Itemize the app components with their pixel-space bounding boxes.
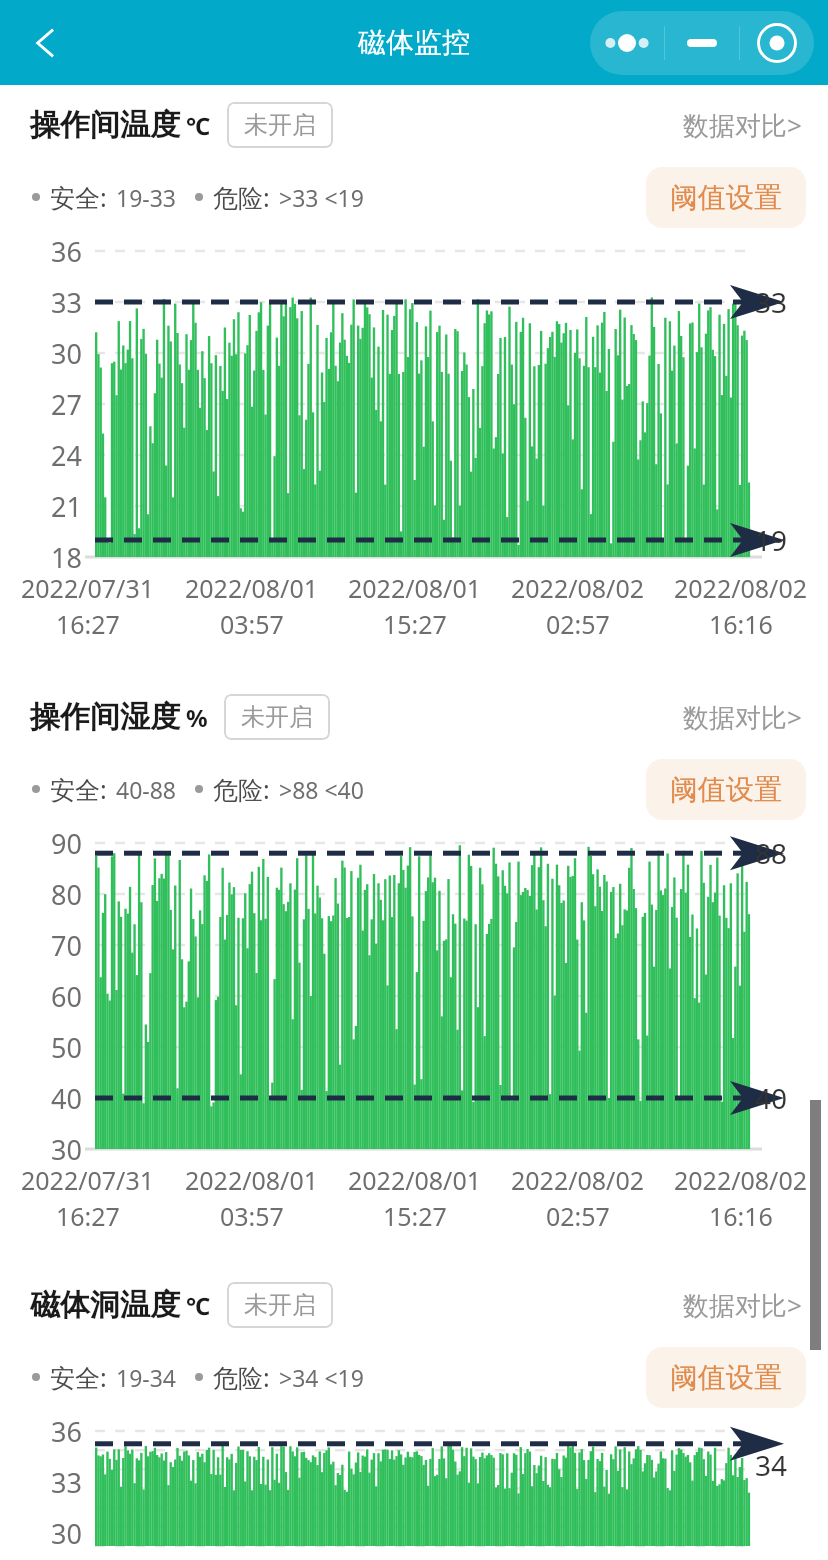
staticText: 安全:	[50, 772, 107, 806]
staticText: 安全:	[50, 1360, 107, 1394]
staticText: 02:57	[546, 1199, 610, 1233]
staticText: ℃	[186, 1289, 211, 1322]
staticText: 19	[755, 521, 788, 559]
staticText: 16:27	[56, 1199, 120, 1233]
staticText: 未开启	[241, 702, 313, 732]
staticText: 30	[10, 335, 82, 372]
button[interactable]: 未开启	[227, 1282, 333, 1328]
staticText: >34 <19	[279, 1362, 364, 1393]
staticText: 操作间温度	[30, 106, 180, 144]
staticText: 03:57	[220, 607, 284, 641]
staticText: 未开启	[244, 110, 316, 140]
staticText: 03:57	[220, 1199, 284, 1233]
staticText: 2022/08/02	[674, 1163, 808, 1197]
button[interactable]: 阈值设置	[646, 759, 806, 820]
staticText: 34	[755, 1446, 788, 1484]
staticText: 36	[10, 233, 82, 270]
staticText: 27	[10, 386, 82, 423]
staticText: 2022/08/02	[674, 571, 808, 605]
staticText: 2022/08/02	[511, 571, 645, 605]
staticText: 60	[10, 978, 82, 1015]
button[interactable]: 阈值设置	[646, 167, 806, 228]
staticText: 15:27	[383, 1199, 447, 1233]
staticText: 80	[10, 876, 82, 913]
staticText: 未开启	[244, 1290, 316, 1320]
staticText: 18	[10, 539, 82, 576]
staticText: 36	[10, 1413, 82, 1450]
button[interactable]: 未开启	[224, 694, 330, 740]
staticText: 数据对比>	[683, 1287, 802, 1323]
button[interactable]: 数据对比>	[679, 101, 806, 149]
staticText: 88	[755, 834, 788, 872]
staticText: 阈值设置	[670, 1360, 782, 1395]
staticText: %	[186, 701, 208, 734]
button[interactable]: Minimize	[665, 11, 739, 75]
staticText: 90	[10, 825, 82, 862]
staticText: 危险:	[213, 180, 270, 214]
staticText: ℃	[186, 109, 211, 142]
staticText: 33	[10, 284, 82, 321]
staticText: 2022/08/01	[185, 571, 319, 605]
staticText: 磁体监控	[358, 25, 470, 60]
button[interactable]: 未开启	[227, 102, 333, 148]
staticText: 02:57	[546, 607, 610, 641]
staticText: 16:16	[709, 1199, 773, 1233]
staticText: 2022/08/01	[348, 1163, 482, 1197]
staticText: 50	[10, 1029, 82, 1066]
staticText: 危险:	[213, 772, 270, 806]
staticText: 40	[10, 1080, 82, 1117]
staticText: 30	[10, 1515, 82, 1552]
staticText: 15:27	[383, 607, 447, 641]
staticText: 危险:	[213, 1360, 270, 1394]
staticText: 40	[755, 1079, 788, 1117]
staticText: >33 <19	[279, 182, 364, 213]
staticText: 70	[10, 927, 82, 964]
staticText: 2022/08/02	[511, 1163, 645, 1197]
staticText: 33	[10, 1464, 82, 1501]
staticText: 19-33	[116, 182, 177, 213]
staticText: 40-88	[116, 774, 177, 805]
staticText: 16:27	[56, 607, 120, 641]
button[interactable]: 阈值设置	[646, 1347, 806, 1408]
staticText: 2022/08/01	[348, 571, 482, 605]
staticText: 16:16	[709, 607, 773, 641]
staticText: 磁体洞温度	[30, 1286, 180, 1324]
staticText: 30	[10, 1131, 82, 1168]
staticText: 操作间湿度	[30, 698, 180, 736]
staticText: 2022/08/01	[185, 1163, 319, 1197]
staticText: 33	[755, 283, 788, 321]
staticText: 2022/07/31	[21, 571, 155, 605]
staticText: 19-34	[116, 1362, 177, 1393]
button[interactable]: Back	[14, 11, 78, 75]
button[interactable]: Close	[740, 11, 814, 75]
staticText: 21	[10, 488, 82, 525]
staticText: 数据对比>	[683, 699, 802, 735]
staticText: 2022/07/31	[21, 1163, 155, 1197]
staticText: >88 <40	[279, 774, 364, 805]
staticText: 数据对比>	[683, 107, 802, 143]
staticText: 阈值设置	[670, 772, 782, 807]
button[interactable]: 数据对比>	[679, 693, 806, 741]
button[interactable]: 数据对比>	[679, 1281, 806, 1329]
staticText: 阈值设置	[670, 180, 782, 215]
staticText: 安全:	[50, 180, 107, 214]
staticText: 24	[10, 437, 82, 474]
button[interactable]: More options	[590, 11, 664, 75]
